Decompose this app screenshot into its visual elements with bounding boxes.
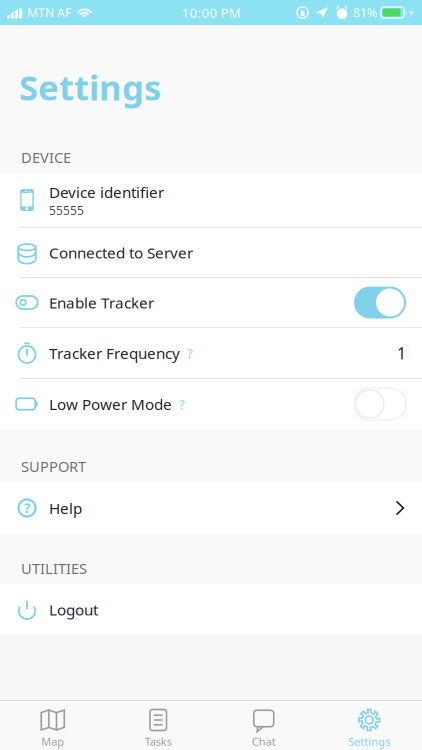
staticText: ?: [187, 344, 193, 362]
staticText: Device identifier: [49, 182, 164, 202]
staticText: Settings: [19, 64, 161, 110]
button[interactable]: Logout: [0, 584, 422, 635]
staticText: Settings: [348, 734, 390, 749]
button[interactable]: Connected to Server: [0, 228, 422, 277]
button[interactable]: Enable Tracker: [0, 278, 422, 327]
staticText: 1: [397, 342, 406, 364]
button[interactable]: Map: [0, 701, 105, 750]
button[interactable]: Chat: [211, 701, 316, 750]
button[interactable]: ?: [0, 482, 422, 534]
staticText: Enable Tracker: [49, 292, 154, 313]
staticText: Help: [49, 498, 82, 518]
staticText: UTILITIES: [21, 558, 87, 578]
button[interactable]: Device identifier: [0, 173, 422, 227]
staticText: 10:00 PM: [181, 3, 240, 22]
staticText: Tracker Frequency: [49, 343, 180, 363]
button[interactable]: Low Power Mode: [0, 379, 422, 429]
staticText: Map: [41, 734, 64, 749]
staticText: Chat: [252, 734, 276, 749]
staticText: ?: [24, 499, 30, 517]
staticText: DEVICE: [21, 147, 71, 167]
button[interactable]: Tasks: [105, 701, 211, 750]
staticText: Logout: [49, 599, 98, 620]
staticText: SUPPORT: [21, 456, 86, 476]
staticText: Low Power Mode: [49, 394, 172, 414]
staticText: 81%: [353, 4, 377, 21]
staticText: 55555: [49, 202, 84, 218]
staticText: MTN AF: [27, 4, 71, 21]
staticText: ?: [179, 395, 185, 413]
button[interactable]: Tracker Frequency: [0, 328, 422, 378]
button[interactable]: Settings: [316, 701, 422, 750]
staticText: Connected to Server: [49, 242, 193, 263]
staticText: Tasks: [145, 734, 172, 749]
